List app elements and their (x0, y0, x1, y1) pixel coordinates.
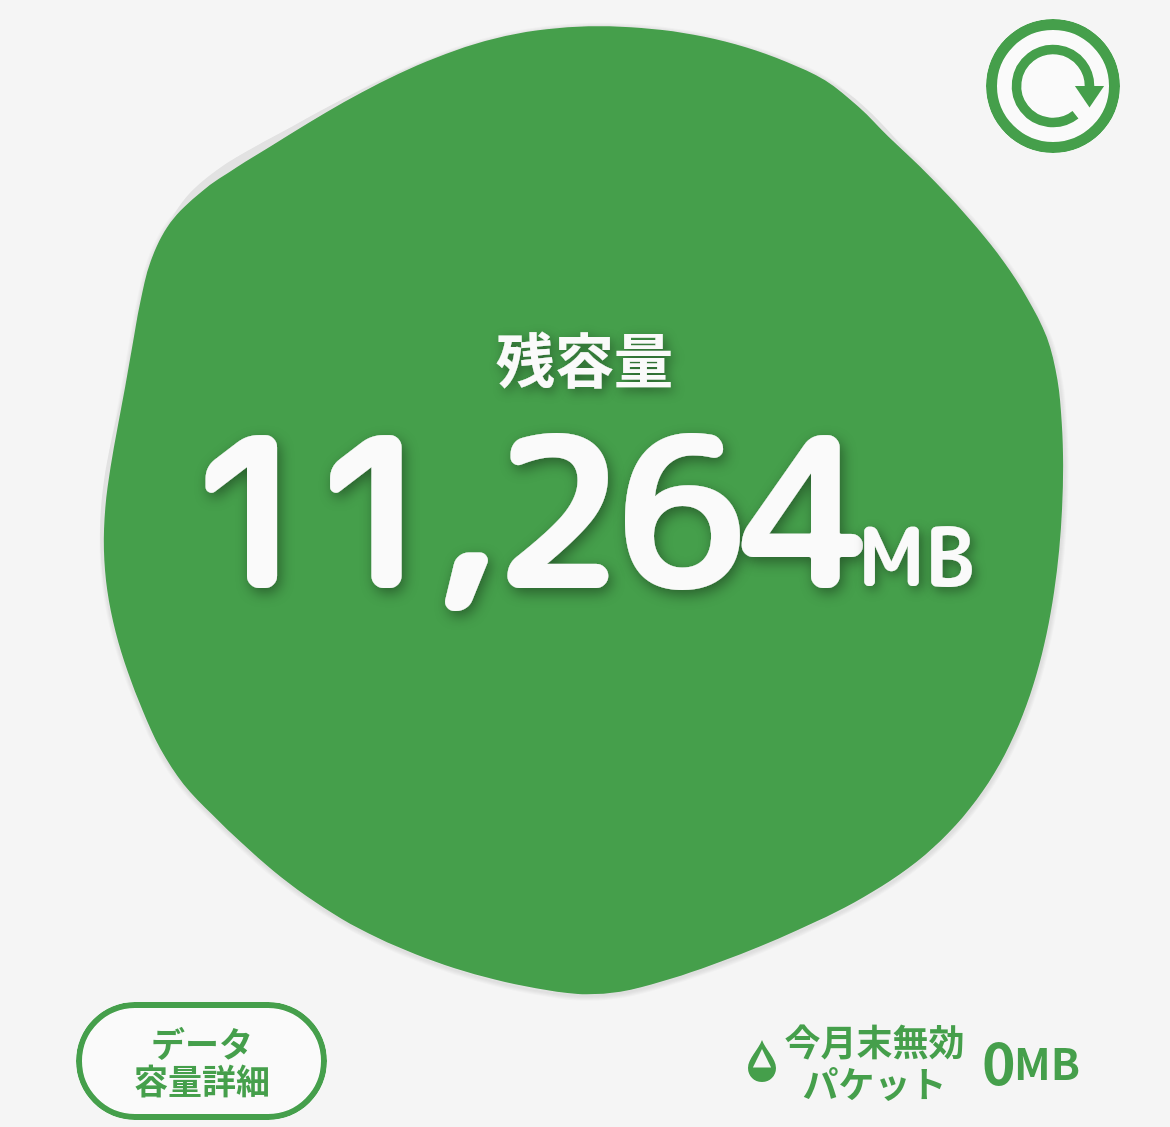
staticText: 0 (982, 1019, 1016, 1102)
staticText: データ 容量詳細 (134, 1018, 270, 1104)
staticText: 11,264 (184, 362, 864, 655)
staticText: MB (1014, 1030, 1080, 1092)
staticText: MB (858, 500, 975, 612)
button[interactable]: Refresh data usage (986, 19, 1120, 153)
button[interactable]: 今月末無効 パケット (740, 1008, 1090, 1108)
staticText: 残容量 (496, 315, 674, 400)
staticText: 今月末無効 パケット (784, 1014, 965, 1109)
button[interactable]: データ 容量詳細 (76, 1002, 327, 1120)
